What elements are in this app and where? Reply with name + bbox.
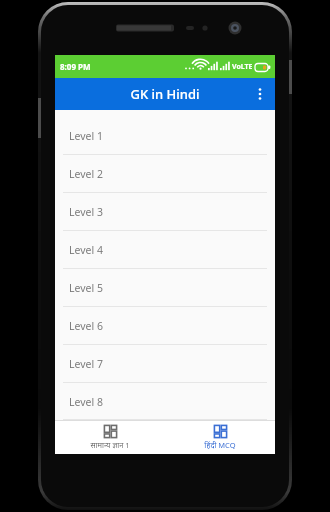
button[interactable]: Level 2	[55, 155, 275, 193]
staticText: VoLTE	[232, 62, 253, 72]
button[interactable]: Level 7	[55, 345, 275, 383]
staticText: हिंदी MCQ	[204, 440, 236, 450]
staticText: Level 4	[69, 243, 103, 257]
button[interactable]: सामान्य ज्ञान 1	[55, 420, 165, 454]
staticText: Level 8	[69, 395, 103, 409]
staticText: सामान्य ज्ञान 1	[90, 440, 130, 450]
button[interactable]: More options	[245, 79, 275, 109]
button[interactable]: Level 5	[55, 269, 275, 307]
staticText: Level 5	[69, 281, 103, 295]
staticText: Level 1	[69, 129, 103, 143]
staticText: GK in Hindi	[130, 85, 200, 103]
button[interactable]: Level 6	[55, 307, 275, 345]
button[interactable]: Level 4	[55, 231, 275, 269]
staticText: Level 6	[69, 319, 103, 333]
button[interactable]: Level 3	[55, 193, 275, 231]
staticText: Level 7	[69, 357, 103, 371]
button[interactable]: Level 8	[55, 383, 275, 420]
staticText: 8:09 PM	[60, 61, 91, 72]
button[interactable]: Level 1	[55, 117, 275, 155]
button[interactable]: हिंदी MCQ	[165, 420, 275, 454]
staticText: Level 2	[69, 167, 103, 181]
staticText: Level 3	[69, 205, 103, 219]
